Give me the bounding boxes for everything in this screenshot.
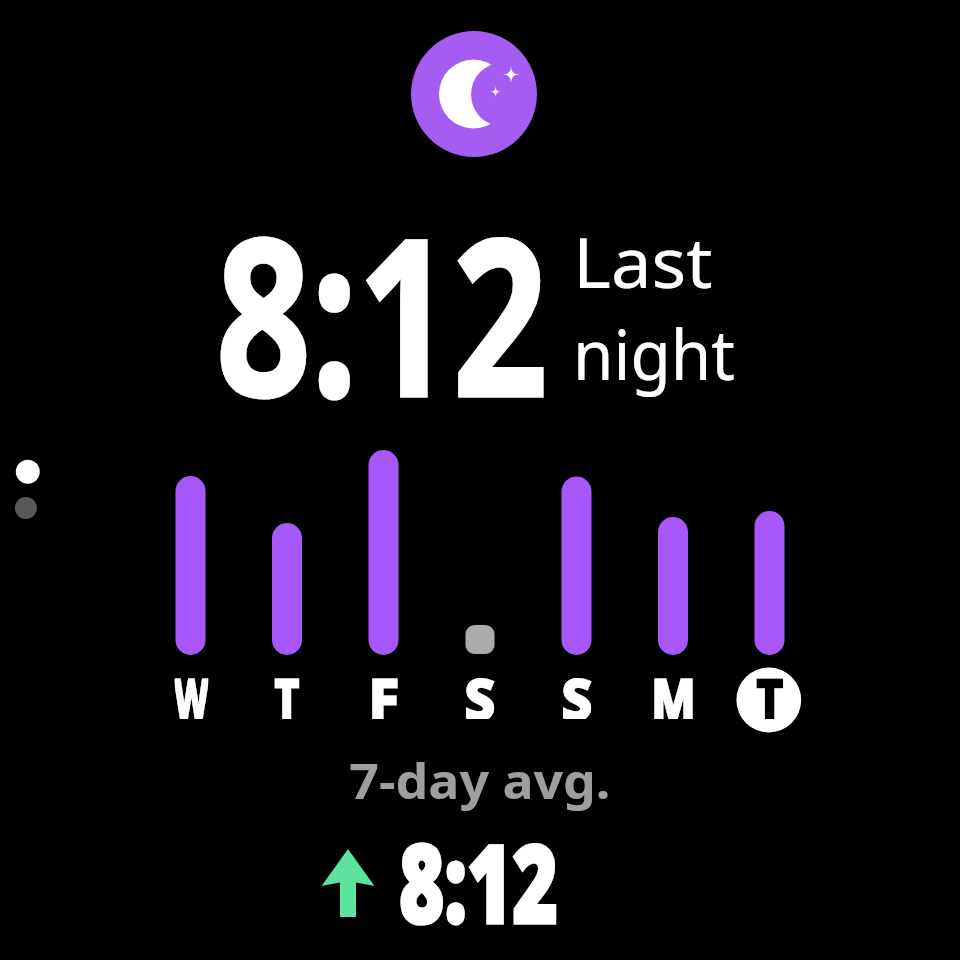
button[interactable] [411,31,537,157]
button[interactable]: S [529,661,625,719]
staticText: night [573,306,735,400]
staticText: S [465,661,495,719]
button[interactable]: W [143,661,239,719]
staticText: S [562,661,592,719]
staticText: S [562,661,592,719]
staticText: T [756,661,783,719]
staticText: Last [573,214,713,308]
staticText: T [274,661,299,719]
staticText: 8:12 [216,164,548,460]
button[interactable]: T [239,661,335,719]
staticText: F [369,661,399,719]
button[interactable]: S [432,661,528,719]
staticText: T [274,661,299,719]
staticText: F [369,661,399,719]
staticText: M [651,661,696,719]
staticText: 8:12 [216,164,548,460]
staticText: W [175,661,208,719]
button[interactable]: T [722,661,818,719]
staticText: 8:12 [399,806,558,954]
staticText: T [756,661,783,719]
staticText: W [175,661,208,719]
button[interactable]: F [336,661,432,719]
staticText: M [651,661,696,719]
button[interactable]: M [625,661,721,719]
staticText: 7-day avg. [349,748,611,812]
staticText: S [465,661,495,719]
staticText: 8:12 [399,806,558,954]
